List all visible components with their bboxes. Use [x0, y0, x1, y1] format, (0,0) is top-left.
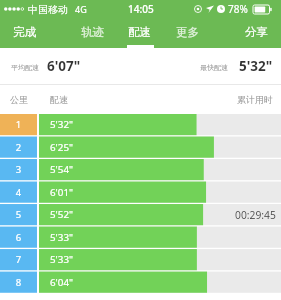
button[interactable]: 更多: [165, 18, 209, 48]
button[interactable]: 完成: [2, 18, 46, 48]
staticText: 7: [0, 253, 37, 266]
other: Battery 78 percent: [253, 5, 273, 14]
staticText: 78%: [228, 2, 248, 16]
staticText: 3: [0, 163, 37, 176]
staticText: 4: [0, 186, 37, 199]
staticText: 5'54": [50, 163, 74, 176]
button[interactable]: 4: [0, 182, 281, 203]
button[interactable]: 分享: [234, 18, 278, 48]
button[interactable]: 1: [0, 114, 281, 135]
other: Location: [194, 5, 202, 13]
staticText: 中国移动: [28, 3, 68, 16]
staticText: 5'33": [50, 253, 74, 266]
staticText: 5'52": [50, 208, 74, 221]
staticText: 8: [0, 276, 37, 289]
staticText: 6: [0, 231, 37, 244]
staticText: 配速: [50, 94, 68, 105]
staticText: 最快配速: [200, 63, 228, 72]
button[interactable]: 5: [0, 204, 281, 225]
staticText: 配速: [128, 25, 151, 39]
staticText: 5'32": [50, 118, 74, 131]
staticText: 2: [0, 141, 37, 154]
staticText: 4G: [75, 3, 87, 15]
button[interactable]: 8: [0, 272, 281, 293]
staticText: 6'01": [50, 186, 74, 199]
staticText: 更多: [176, 25, 199, 39]
button[interactable]: 轨迹: [70, 18, 114, 48]
staticText: 00:29:45: [235, 208, 276, 222]
staticText: 公里: [10, 94, 28, 105]
staticText: 平均配速: [11, 63, 39, 72]
staticText: 分享: [245, 25, 268, 39]
other: Signal strength: [4, 6, 25, 12]
staticText: 累计用时: [237, 94, 273, 105]
staticText: 完成: [13, 25, 36, 39]
staticText: 6'25": [50, 141, 74, 154]
staticText: 1: [0, 118, 37, 131]
other: Alarm: [217, 5, 225, 13]
button[interactable]: 6: [0, 227, 281, 248]
staticText: 5'33": [50, 231, 74, 244]
button[interactable]: 2: [0, 137, 281, 158]
button[interactable]: 7: [0, 249, 281, 270]
staticText: 5'32": [239, 57, 273, 75]
button[interactable]: 配速: [117, 18, 161, 48]
other: Navigation: [206, 5, 214, 13]
button[interactable]: 3: [0, 159, 281, 180]
staticText: 5: [0, 208, 37, 221]
staticText: 6'07": [47, 57, 81, 75]
staticText: 轨迹: [81, 25, 104, 39]
staticText: 6'04": [50, 276, 74, 289]
staticText: 14:05: [128, 2, 154, 16]
